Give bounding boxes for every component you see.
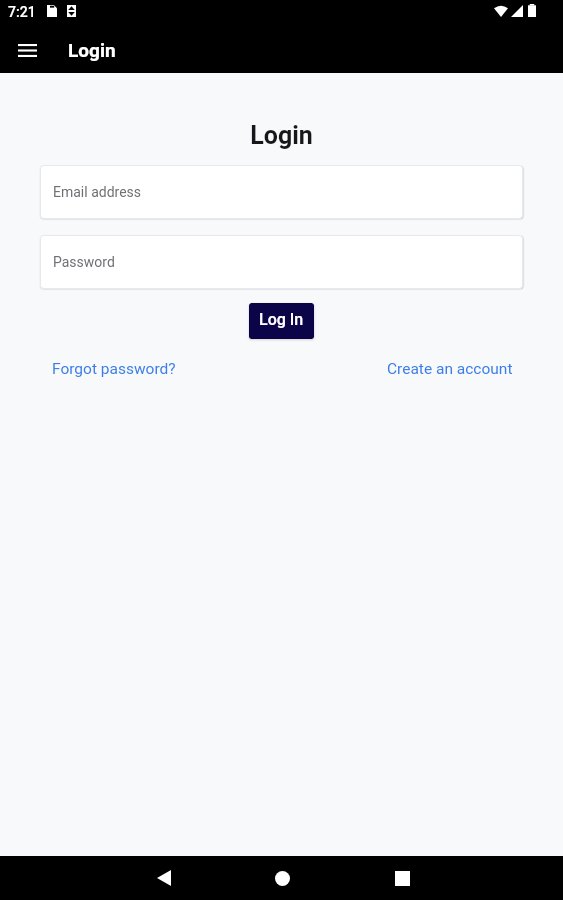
staticText: Login — [68, 39, 116, 61]
button[interactable]: Password — [40, 235, 523, 289]
button[interactable]: Home — [258, 856, 306, 900]
staticText: Email address — [53, 184, 142, 200]
button[interactable]: Back — [140, 856, 188, 900]
staticText: Forgot password? — [52, 360, 176, 378]
button[interactable]: Create an account — [387, 353, 513, 385]
button[interactable]: Email address — [40, 165, 523, 219]
staticText: Password — [53, 254, 115, 270]
staticText: Login — [0, 121, 563, 150]
staticText: Log In — [259, 310, 304, 329]
staticText: 7:21 — [8, 4, 36, 20]
button[interactable]: Open navigation menu — [0, 27, 45, 73]
button[interactable]: Log In — [249, 303, 314, 339]
button[interactable]: Forgot password? — [52, 353, 176, 385]
button[interactable]: Recent apps — [378, 856, 426, 900]
staticText: Create an account — [387, 360, 513, 378]
